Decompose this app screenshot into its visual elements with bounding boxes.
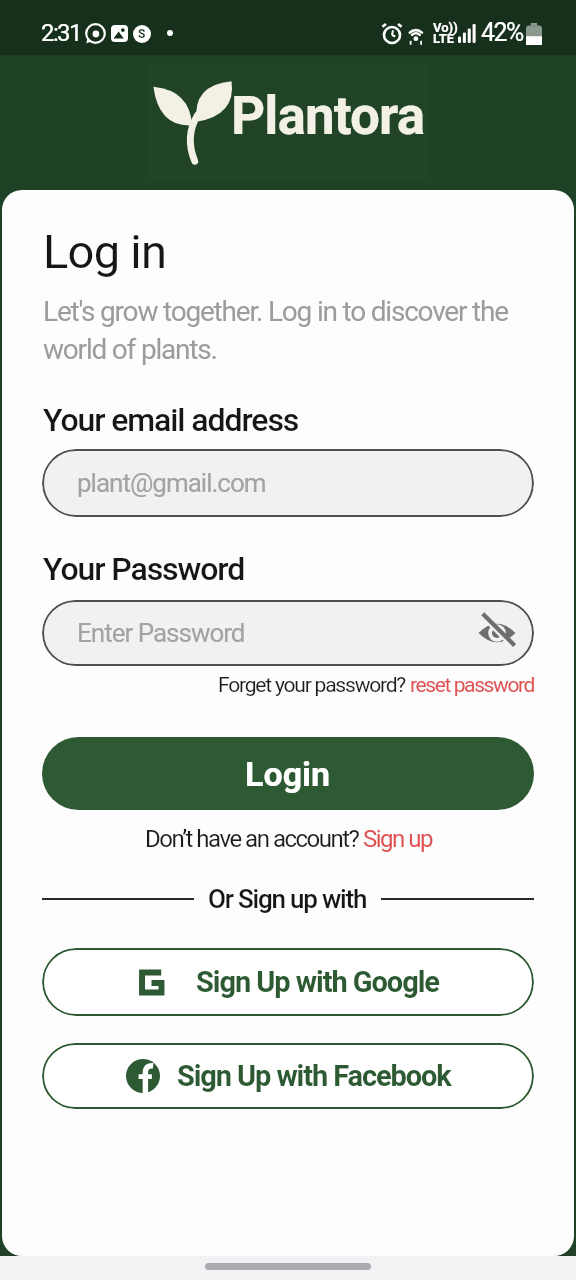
staticText: Don’t have an account?	[145, 825, 363, 853]
staticText: Forget your password?	[218, 673, 410, 698]
staticText: Or Sign up with	[208, 884, 367, 914]
button[interactable]: Sign Up with Google	[42, 948, 534, 1016]
staticText: Your Password	[43, 550, 245, 588]
staticText: Sign Up with Facebook	[177, 1059, 451, 1093]
button[interactable]: Sign Up with Facebook	[42, 1043, 534, 1109]
button[interactable]: Login	[42, 737, 534, 810]
staticText: LTE	[433, 31, 455, 46]
staticText: Sign Up with Google	[196, 965, 439, 999]
staticText: S	[138, 27, 146, 41]
staticText: Plantora	[231, 85, 425, 147]
staticText: 42%	[481, 18, 523, 47]
button[interactable]: Enter Password	[42, 600, 534, 666]
staticText: Log in	[43, 224, 167, 279]
staticText: Login	[245, 754, 331, 794]
staticText: Enter Password	[77, 618, 245, 648]
button[interactable]: plant@gmail.com	[42, 449, 534, 517]
staticText: 2:31	[41, 19, 81, 47]
staticText: plant@gmail.com	[77, 468, 266, 498]
staticText: Let's grow together. Log in to discover …	[43, 295, 508, 366]
button[interactable]: reset password	[410, 673, 534, 698]
staticText: Your email address	[43, 401, 299, 439]
staticText: Vo))	[433, 20, 458, 35]
button[interactable]: Sign up	[363, 825, 432, 853]
